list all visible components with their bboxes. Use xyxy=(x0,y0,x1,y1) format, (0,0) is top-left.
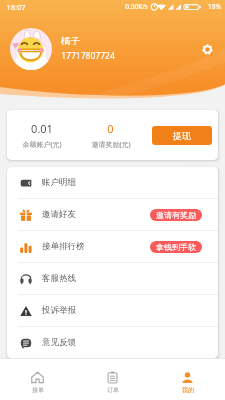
staticText: 18:07 xyxy=(6,2,26,12)
button[interactable]: 我的 xyxy=(150,359,225,400)
button[interactable]: 接单排行榜 xyxy=(7,231,218,262)
staticText: 17717807724 xyxy=(61,50,115,62)
staticText: 0.01 xyxy=(31,121,53,136)
button[interactable]: 邀请好友 xyxy=(7,199,218,230)
staticText: 邀请有奖励 xyxy=(156,210,196,220)
staticText: 账户明细 xyxy=(42,177,76,188)
staticText: 提现 xyxy=(173,130,191,141)
staticText: 0 xyxy=(107,121,114,136)
button[interactable]: 意见反馈 xyxy=(7,327,218,358)
staticText: 0.00K/s xyxy=(125,2,148,11)
staticText: 邀请奖励(元) xyxy=(91,140,131,150)
button[interactable]: 提现 xyxy=(152,126,212,145)
button[interactable]: 接单 xyxy=(0,359,75,400)
button[interactable]: 客服热线 xyxy=(7,263,218,294)
button[interactable]: 投诉举报 xyxy=(7,295,218,326)
staticText: 余额账户(元) xyxy=(22,140,62,150)
staticText: 邀请好友 xyxy=(42,209,76,220)
button[interactable]: Settings xyxy=(195,37,219,61)
staticText: 橘子 xyxy=(61,35,80,47)
button[interactable]: 订单 xyxy=(75,359,150,400)
staticText: 拿钱到手软 xyxy=(156,242,196,252)
staticText: 订单 xyxy=(107,386,119,394)
staticText: 18% xyxy=(208,2,221,11)
staticText: 接单 xyxy=(32,386,44,394)
button[interactable]: 账户明细 xyxy=(7,167,218,198)
staticText: 客服热线 xyxy=(42,273,76,284)
staticText: 意见反馈 xyxy=(42,337,76,348)
staticText: 接单排行榜 xyxy=(42,241,85,252)
staticText: 我的 xyxy=(182,386,194,394)
staticText: 投诉举报 xyxy=(42,305,76,316)
